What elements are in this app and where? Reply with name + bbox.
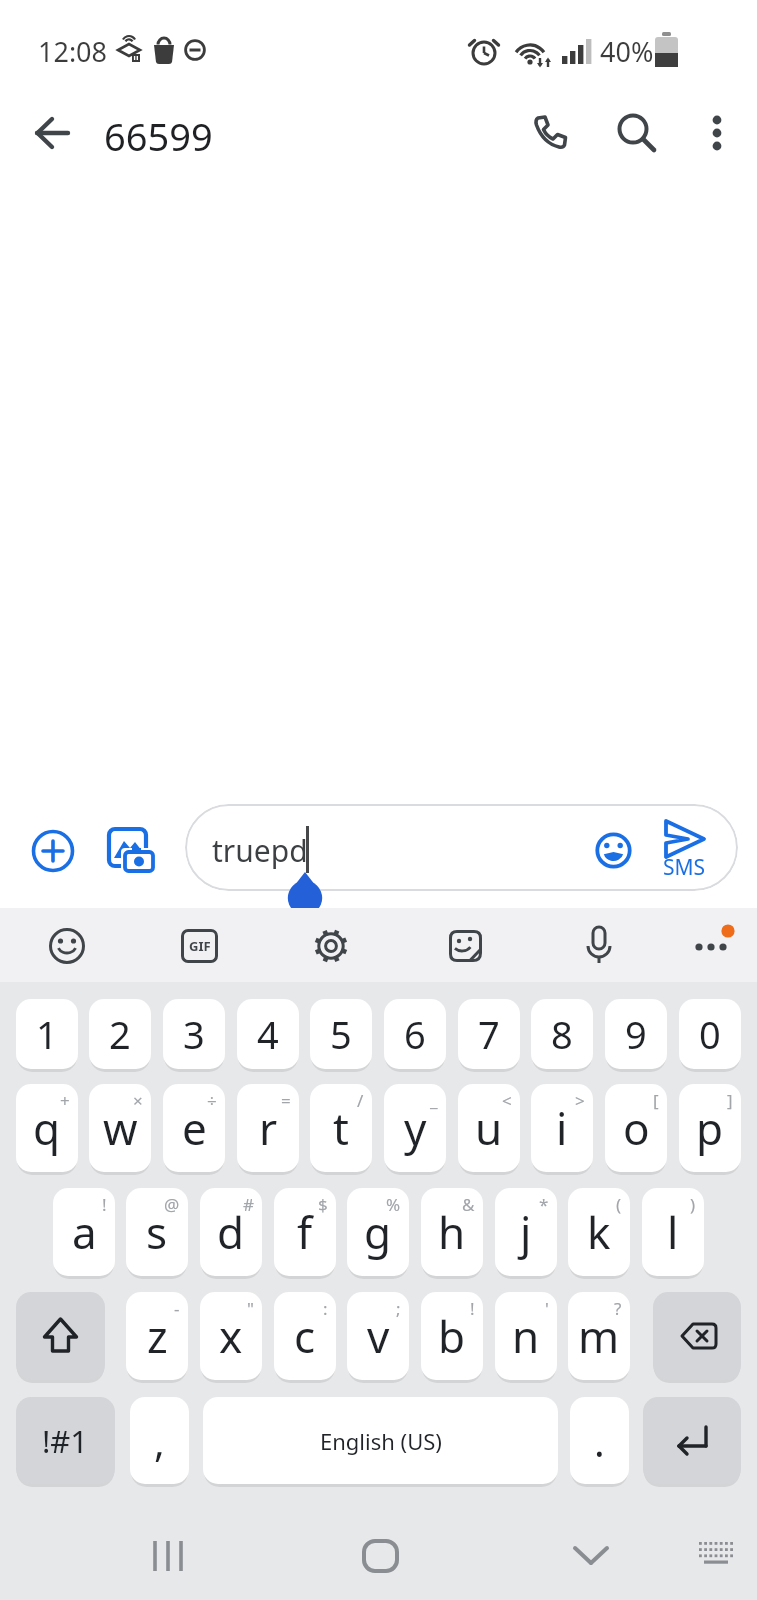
button[interactable]: w [89,1084,151,1172]
button[interactable]: q [16,1084,78,1172]
staticText: 5 [330,1008,352,1060]
button[interactable]: c [274,1292,336,1380]
button[interactable]: i [531,1084,593,1172]
button[interactable]: , [130,1397,189,1484]
staticText: x [219,1306,243,1366]
button[interactable] [580,925,618,967]
staticText: r [259,1098,278,1158]
button[interactable]: t [310,1084,372,1172]
button[interactable] [702,110,732,156]
button[interactable] [34,115,72,151]
staticText: k [587,1202,611,1262]
staticText: + [60,1089,70,1112]
button[interactable]: 66599 [104,110,213,162]
button[interactable] [653,1292,741,1380]
staticText: h [438,1202,466,1262]
button[interactable]: 8 [531,999,593,1069]
staticText: * [539,1193,549,1216]
button[interactable] [531,114,571,152]
button[interactable]: v [347,1292,409,1380]
button[interactable]: u [458,1084,520,1172]
button[interactable]: 3 [163,999,225,1069]
button[interactable]: k [568,1188,630,1276]
staticText: ] [727,1089,733,1112]
staticText: z [147,1306,168,1366]
button[interactable]: x [200,1292,262,1380]
staticText: i [556,1098,568,1158]
button[interactable]: y [384,1084,446,1172]
button[interactable]: n [495,1292,557,1380]
button[interactable] [31,829,75,873]
staticText: d [217,1202,245,1262]
button[interactable]: 2 [89,999,151,1069]
button[interactable]: l [642,1188,704,1276]
staticText: 6 [404,1008,426,1060]
button[interactable]: b [421,1292,483,1380]
button[interactable]: s [126,1188,188,1276]
staticText: × [133,1089,143,1112]
staticText: t [333,1098,349,1158]
button[interactable]: m [568,1292,630,1380]
staticText: ( [616,1193,622,1216]
button[interactable] [312,927,350,965]
staticText: 12:08 [38,33,108,70]
button[interactable] [595,832,632,869]
button[interactable]: h [421,1188,483,1276]
button[interactable]: f [274,1188,336,1276]
button[interactable]: o [605,1084,667,1172]
staticText: 7 [478,1008,500,1060]
staticText: m [578,1306,620,1366]
staticText: ÷ [207,1089,217,1112]
staticText: y [404,1098,427,1158]
button[interactable]: a [53,1188,115,1276]
button[interactable]: . [570,1397,629,1484]
staticText: l [667,1202,679,1262]
button[interactable] [148,1538,190,1574]
staticText: : [323,1297,328,1320]
staticText: < [502,1089,512,1112]
button[interactable]: 5 [310,999,372,1069]
staticText: ? [614,1297,622,1320]
button[interactable]: j [495,1188,557,1276]
button[interactable] [643,1397,741,1484]
staticText: SMS [663,853,706,882]
staticText: g [364,1202,392,1262]
button[interactable]: z [126,1292,188,1380]
button[interactable]: English (US) [203,1397,558,1484]
button[interactable] [697,1540,737,1572]
button[interactable] [105,824,157,876]
button[interactable] [362,1539,400,1573]
button[interactable]: r [237,1084,299,1172]
button[interactable]: 9 [605,999,667,1069]
staticText: , [154,1414,165,1468]
staticText: > [575,1089,585,1112]
staticText: / [357,1089,364,1112]
button[interactable] [16,1292,105,1380]
button[interactable]: 0 [679,999,741,1069]
button[interactable] [616,112,658,154]
button[interactable] [447,927,485,965]
button[interactable]: 4 [237,999,299,1069]
staticText: & [462,1193,475,1216]
staticText: % [386,1193,401,1216]
button[interactable]: 6 [384,999,446,1069]
button[interactable] [572,1543,610,1569]
button[interactable]: 1 [16,999,78,1069]
staticText: . [594,1414,605,1468]
button[interactable] [662,818,712,882]
staticText: ! [102,1193,107,1216]
button[interactable] [48,927,86,965]
button[interactable]: d [200,1188,262,1276]
button[interactable] [690,922,738,970]
staticText: 0 [699,1008,721,1060]
button[interactable] [185,804,738,891]
staticText: [ [653,1089,659,1112]
button[interactable]: g [347,1188,409,1276]
button[interactable]: GIF [181,929,218,963]
staticText: v [367,1306,390,1366]
button[interactable]: 7 [458,999,520,1069]
button[interactable]: !#1 [16,1397,115,1484]
button[interactable]: p [679,1084,741,1172]
button[interactable]: e [163,1084,225,1172]
staticText: !#1 [42,1420,89,1462]
